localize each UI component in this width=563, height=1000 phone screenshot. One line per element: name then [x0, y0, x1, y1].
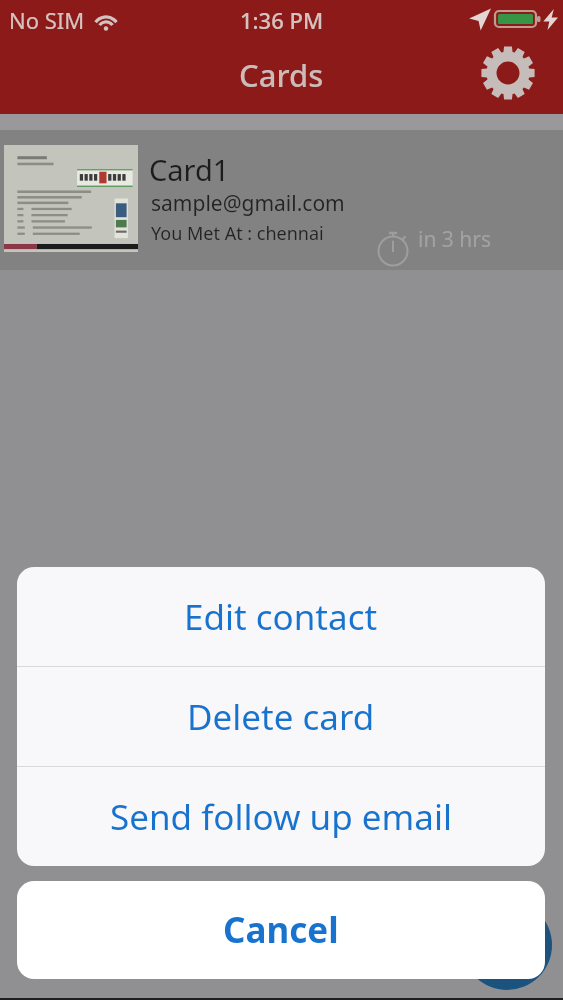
- button[interactable]: Delete card: [17, 667, 545, 766]
- staticText: You Met At : chennai: [151, 221, 324, 246]
- staticText: in 3 hrs: [418, 225, 492, 254]
- staticText: Delete card: [187, 693, 375, 741]
- staticText: Cancel: [223, 906, 339, 954]
- staticText: No SIM: [9, 5, 85, 35]
- button[interactable]: Edit contact: [17, 567, 545, 666]
- staticText: sample@gmail.com: [151, 189, 345, 218]
- staticText: Card1: [149, 150, 230, 189]
- staticText: Cards: [239, 54, 324, 96]
- staticText: Send follow up email: [110, 793, 452, 841]
- button[interactable]: Cancel: [17, 881, 545, 979]
- button[interactable]: Send follow up email: [17, 767, 545, 866]
- button[interactable]: Card1: [0, 130, 563, 270]
- button[interactable]: Settings: [478, 43, 538, 103]
- staticText: 1:36 PM: [240, 5, 324, 35]
- staticText: Edit contact: [184, 593, 378, 641]
- button[interactable]: Add card: [462, 900, 552, 990]
